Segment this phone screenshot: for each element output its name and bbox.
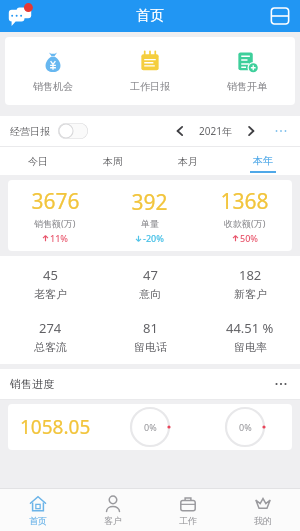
staticText: 11% — [50, 232, 68, 244]
staticText: 2021年 — [199, 124, 232, 138]
staticText: -20% — [143, 232, 164, 244]
button[interactable]: 1058.05 — [8, 404, 292, 450]
staticText: 本年 — [253, 154, 273, 167]
button[interactable]: More options — [272, 122, 290, 140]
staticText: 工作日报 — [130, 80, 170, 93]
button[interactable]: 3676 — [8, 187, 102, 244]
button[interactable]: 工作日报 — [101, 43, 198, 99]
button[interactable]: 客户 — [75, 494, 150, 526]
staticText: 意向 — [139, 287, 161, 301]
staticText: 留电话 — [134, 340, 167, 354]
staticText: 新客户 — [234, 287, 267, 301]
staticText: 首页 — [29, 515, 47, 526]
staticText: 销售开单 — [227, 80, 267, 93]
staticText: 274 — [39, 319, 62, 337]
staticText: 老客户 — [34, 287, 67, 301]
button[interactable]: 182 — [200, 266, 300, 301]
button[interactable]: Toggle daily report — [58, 123, 88, 139]
button[interactable]: Previous year — [171, 122, 189, 140]
button[interactable]: 销售开单 — [198, 43, 295, 99]
button[interactable]: 81 — [100, 319, 200, 354]
staticText: 392 — [131, 188, 168, 217]
button[interactable]: 工作 — [150, 494, 225, 526]
staticText: 45 — [43, 266, 58, 284]
button[interactable]: 首页 — [0, 494, 75, 526]
staticText: 本月 — [178, 155, 198, 168]
button[interactable]: Scan — [268, 4, 292, 28]
staticText: 44.51 % — [226, 319, 274, 337]
staticText: 留电率 — [234, 340, 267, 354]
button[interactable]: 1368 — [197, 187, 292, 244]
button[interactable]: 274 — [0, 319, 100, 354]
staticText: 收款额(万) — [224, 217, 266, 229]
staticText: 本周 — [103, 155, 123, 168]
staticText: 47 — [143, 266, 158, 284]
staticText: 首页 — [136, 7, 164, 25]
staticText: 客户 — [104, 515, 122, 526]
staticText: 81 — [143, 319, 158, 337]
button[interactable]: Next year — [242, 122, 260, 140]
button[interactable]: 我的 — [225, 494, 300, 526]
button[interactable]: 销售机会 — [5, 43, 101, 99]
button[interactable]: 392 — [102, 188, 197, 244]
button[interactable]: Messages — [6, 2, 34, 30]
button[interactable]: 本周 — [75, 150, 150, 172]
staticText: 经营日报 — [10, 125, 50, 138]
button[interactable]: 44.51 % — [200, 319, 300, 354]
staticText: 182 — [239, 266, 262, 284]
staticText: 1368 — [220, 187, 269, 216]
staticText: 0% — [239, 421, 252, 433]
staticText: 销售机会 — [33, 80, 73, 93]
staticText: 1058.05 — [20, 414, 91, 440]
staticText: 销售进度 — [10, 377, 54, 391]
button[interactable]: 47 — [100, 266, 200, 301]
staticText: 0% — [144, 421, 157, 433]
button[interactable]: 45 — [0, 266, 100, 301]
button[interactable]: 本月 — [150, 150, 225, 172]
staticText: 今日 — [28, 155, 48, 168]
staticText: 总客流 — [34, 340, 67, 354]
staticText: 3676 — [31, 187, 80, 216]
staticText: 单量 — [141, 218, 159, 229]
staticText: 销售额(万) — [34, 217, 76, 229]
button[interactable]: More options — [272, 375, 290, 393]
staticText: 50% — [240, 232, 258, 244]
staticText: 我的 — [254, 515, 272, 526]
button[interactable]: 本年 — [225, 149, 300, 173]
button[interactable]: 今日 — [0, 150, 75, 172]
staticText: 工作 — [179, 515, 197, 526]
